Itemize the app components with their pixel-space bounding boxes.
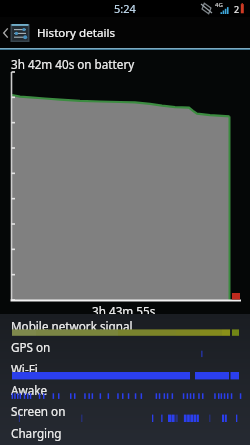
staticText: 5:24 <box>114 1 136 16</box>
button[interactable]: Screen on <box>11 403 66 419</box>
staticText: 2 <box>234 3 240 15</box>
staticText: History details <box>37 25 115 41</box>
button[interactable]: Awake <box>11 382 48 398</box>
button[interactable]: Navigate up <box>0 17 250 48</box>
button[interactable]: Wi-Fi <box>11 361 38 377</box>
other: Navigate up <box>0 17 10 48</box>
button[interactable]: GPS on <box>11 339 51 355</box>
button[interactable]: Mobile network signal <box>11 318 133 334</box>
button[interactable]: Charging <box>11 425 62 441</box>
staticText: 3h 42m 40s on battery <box>11 56 135 72</box>
staticText: 4G <box>215 1 223 9</box>
staticText: 3h 43m 55s <box>92 303 156 319</box>
